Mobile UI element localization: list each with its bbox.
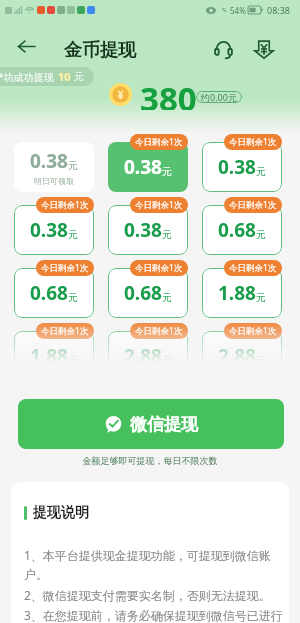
staticText: 元: [256, 354, 266, 367]
staticText: 金额足够即可提现，每日不限次数: [0, 455, 300, 466]
staticText: 2.88: [218, 343, 256, 369]
button[interactable]: Back: [11, 31, 41, 61]
staticText: 1.88: [30, 343, 68, 369]
staticText: 0.68: [124, 280, 162, 306]
staticText: 今日剩余1次: [135, 325, 183, 337]
button[interactable]: 0.38: [14, 205, 94, 255]
staticText: 今日剩余1次: [135, 199, 183, 211]
staticText: 今日剩余1次: [229, 199, 277, 211]
button[interactable]: 1.88: [202, 268, 282, 318]
button[interactable]: 0.38: [108, 142, 188, 192]
button[interactable]: 2.88: [108, 331, 188, 374]
staticText: 金币提现: [64, 39, 136, 62]
staticText: 54%: [230, 5, 246, 16]
button[interactable]: Withdraw records: [250, 35, 278, 63]
staticText: 明日可领取: [34, 176, 74, 186]
staticText: 元: [256, 291, 266, 304]
button[interactable]: 0.38: [108, 205, 188, 255]
staticText: 1、本平台提供现金提现功能，可提现到微信账户。: [24, 547, 283, 583]
staticText: 元: [74, 70, 84, 83]
staticText: 0.38: [30, 148, 68, 174]
staticText: 今日剩余1次: [41, 325, 89, 337]
button[interactable]: Customer service: [209, 35, 237, 63]
staticText: 元: [162, 354, 172, 367]
button[interactable]: 0.38: [202, 142, 282, 192]
staticText: 今日剩余1次: [135, 136, 183, 148]
staticText: 今日剩余1次: [41, 262, 89, 274]
staticText: 今日剩余1次: [135, 262, 183, 274]
staticText: 08:38: [267, 4, 291, 16]
staticText: 2.88: [124, 343, 162, 369]
staticText: 0.38: [124, 154, 162, 180]
button[interactable]: 2.88: [202, 331, 282, 374]
button[interactable]: 1.88: [14, 331, 94, 374]
staticText: 约0.00元: [201, 91, 237, 103]
staticText: 今日剩余1次: [41, 199, 89, 211]
staticText: 0.38: [124, 217, 162, 243]
staticText: 元: [68, 159, 78, 172]
button[interactable]: 微信提现: [18, 399, 284, 449]
staticText: 今日剩余1次: [229, 262, 277, 274]
staticText: 0.68: [30, 280, 68, 306]
staticText: 2、微信提现支付需要实名制，否则无法提现。: [24, 587, 271, 603]
staticText: *坊成功提现: [0, 70, 54, 84]
button[interactable]: 0.68: [202, 205, 282, 255]
button[interactable]: 0.68: [14, 268, 94, 318]
staticText: 元: [68, 291, 78, 304]
staticText: 元: [162, 165, 172, 178]
staticText: 3、在您提现前，请务必确保提现到微信号已进行实名认证。: [24, 607, 283, 623]
staticText: 0.38: [30, 217, 68, 243]
button[interactable]: 0.38: [14, 142, 94, 192]
staticText: 元: [256, 228, 266, 241]
staticText: 元: [256, 165, 266, 178]
staticText: 今日剩余1次: [229, 325, 277, 337]
staticText: 元: [162, 291, 172, 304]
staticText: 10: [58, 69, 71, 84]
staticText: 380: [140, 76, 197, 110]
staticText: 微信提现: [130, 414, 198, 435]
staticText: 元: [68, 354, 78, 367]
staticText: 今日剩余1次: [229, 136, 277, 148]
staticText: 元: [162, 228, 172, 241]
staticText: 1.88: [218, 280, 256, 306]
staticText: 0.68: [218, 217, 256, 243]
staticText: 提现说明: [33, 504, 89, 522]
staticText: 元: [68, 228, 78, 241]
button[interactable]: 0.68: [108, 268, 188, 318]
staticText: 0.38: [218, 154, 256, 180]
